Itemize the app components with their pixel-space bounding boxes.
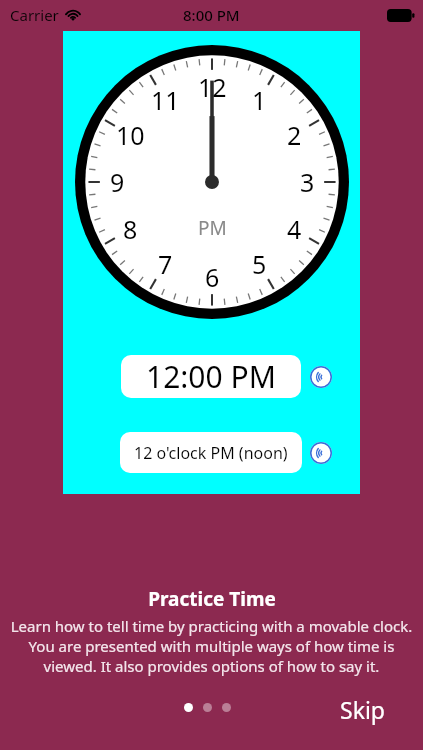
staticText: 5: [252, 247, 267, 281]
staticText: Practice Time: [148, 586, 276, 612]
button[interactable]: Skip: [340, 694, 385, 725]
staticText: 8: [123, 212, 138, 246]
staticText: Skip: [340, 694, 385, 725]
staticText: Carrier: [10, 5, 59, 25]
staticText: 4: [287, 212, 302, 246]
button[interactable]: 12:00 PM: [121, 355, 301, 398]
staticText: 11: [151, 83, 180, 117]
staticText: 12: [198, 70, 227, 104]
staticText: 1: [252, 83, 267, 117]
staticText: 8:00 PM: [183, 5, 240, 25]
staticText: 2: [287, 118, 302, 152]
button[interactable]: Speak time: [310, 366, 332, 388]
button[interactable]: 12 o'clock PM (noon): [120, 432, 302, 473]
staticText: 3: [300, 165, 315, 199]
staticText: 6: [205, 260, 220, 294]
staticText: Learn how to tell time by practicing wit…: [8, 616, 415, 676]
button[interactable]: Speak phrase: [310, 442, 332, 464]
staticText: PM: [198, 215, 227, 241]
staticText: 7: [158, 247, 173, 281]
staticText: 10: [116, 118, 145, 152]
staticText: 12:00 PM: [146, 356, 276, 397]
staticText: 9: [110, 165, 125, 199]
staticText: 12 o'clock PM (noon): [134, 442, 288, 464]
